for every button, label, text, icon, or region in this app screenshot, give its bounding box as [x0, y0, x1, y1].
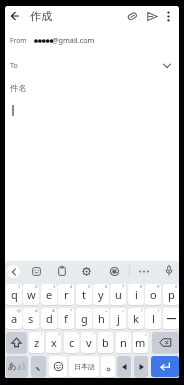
- staticText: ": [93, 332, 95, 338]
- staticText: j: [117, 311, 120, 326]
- staticText: l: [152, 311, 155, 326]
- button[interactable]: i: [128, 284, 144, 305]
- button[interactable]: v: [81, 332, 96, 353]
- button[interactable]: [134, 356, 148, 377]
- button[interactable]: [151, 356, 179, 377]
- staticText: e: [46, 287, 53, 302]
- staticText: w: [27, 287, 36, 302]
- staticText: *: [70, 308, 73, 314]
- button[interactable]: [82, 267, 91, 276]
- staticText: 4: [70, 284, 73, 290]
- staticText: ;: [128, 332, 130, 338]
- button[interactable]: [165, 265, 173, 277]
- button[interactable]: b: [98, 332, 113, 353]
- staticText: From: [10, 36, 27, 45]
- button[interactable]: [152, 332, 179, 353]
- button[interactable]: q: [6, 284, 22, 305]
- staticText: @: [17, 308, 21, 314]
- button[interactable]: To: [5, 51, 179, 77]
- button[interactable]: o: [145, 284, 161, 305]
- staticText: f: [64, 311, 68, 326]
- staticText: 3: [53, 284, 56, 290]
- button[interactable]: d: [41, 308, 57, 329]
- button[interactable]: 日本語: [69, 356, 99, 377]
- button[interactable]: l: [145, 308, 161, 329]
- staticText: 0: [175, 284, 178, 290]
- button[interactable]: m: [133, 332, 148, 353]
- staticText: a1: [17, 361, 27, 372]
- button[interactable]: [49, 356, 67, 377]
- staticText: c: [69, 335, 75, 350]
- staticText: @gmail.com: [52, 35, 95, 45]
- staticText: s: [28, 311, 34, 326]
- staticText: b: [102, 335, 109, 350]
- staticText: t: [82, 287, 86, 302]
- staticText: :: [110, 332, 112, 338]
- button[interactable]: a: [6, 308, 22, 329]
- button[interactable]: s: [23, 308, 39, 329]
- staticText: To: [10, 60, 18, 70]
- staticText: x: [51, 335, 57, 350]
- button[interactable]: k: [128, 308, 144, 329]
- button[interactable]: t: [76, 284, 92, 305]
- staticText: #: [35, 308, 38, 314]
- button[interactable]: あ: [6, 356, 28, 377]
- button[interactable]: [10, 11, 20, 21]
- button[interactable]: [32, 267, 41, 276]
- staticText: z: [34, 335, 40, 350]
- staticText: 6: [105, 284, 108, 290]
- button[interactable]: [101, 356, 115, 377]
- button[interactable]: e: [41, 284, 57, 305]
- button[interactable]: f: [58, 308, 74, 329]
- staticText: v: [86, 335, 92, 350]
- staticText: q: [11, 287, 18, 302]
- button[interactable]: [117, 356, 131, 377]
- staticText: ): [158, 308, 160, 314]
- button[interactable]: j: [110, 308, 126, 329]
- button[interactable]: [6, 332, 27, 353]
- button[interactable]: w: [23, 284, 39, 305]
- staticText: ー: [166, 312, 177, 326]
- staticText: p: [168, 287, 175, 302]
- staticText: u: [115, 287, 122, 302]
- button[interactable]: [165, 11, 172, 22]
- button[interactable]: c: [64, 332, 79, 353]
- button[interactable]: [127, 12, 138, 21]
- button[interactable]: [110, 267, 119, 276]
- staticText: -: [89, 308, 91, 314]
- staticText: 8: [140, 284, 143, 290]
- staticText: +: [105, 308, 108, 314]
- staticText: 9: [157, 284, 160, 290]
- staticText: o: [150, 287, 157, 302]
- button[interactable]: g: [76, 308, 92, 329]
- button[interactable]: [31, 356, 46, 377]
- button[interactable]: 件名: [5, 77, 179, 101]
- staticText: 件名: [10, 83, 27, 93]
- button[interactable]: u: [110, 284, 126, 305]
- staticText: 1: [18, 284, 21, 290]
- button[interactable]: n: [116, 332, 131, 353]
- button[interactable]: [58, 266, 66, 276]
- staticText: 5: [88, 284, 91, 290]
- staticText: &: [52, 308, 56, 314]
- button[interactable]: [7, 265, 20, 278]
- button[interactable]: [147, 12, 158, 21]
- button[interactable]: z: [29, 332, 44, 353]
- staticText: g: [81, 311, 88, 326]
- button[interactable]: ー: [163, 308, 179, 329]
- staticText: (: [141, 308, 143, 314]
- staticText: 7: [122, 284, 125, 290]
- button[interactable]: r: [58, 284, 74, 305]
- staticText: 作成: [30, 9, 52, 23]
- button[interactable]: x: [46, 332, 61, 353]
- staticText: /: [145, 332, 147, 338]
- button[interactable]: h: [93, 308, 109, 329]
- staticText: n: [120, 335, 127, 350]
- staticText: i: [135, 287, 138, 302]
- button[interactable]: [138, 270, 150, 273]
- button[interactable]: y: [93, 284, 109, 305]
- button[interactable]: From: [5, 30, 179, 51]
- staticText: y: [98, 287, 104, 302]
- staticText: r: [64, 287, 69, 302]
- button[interactable]: p: [163, 284, 179, 305]
